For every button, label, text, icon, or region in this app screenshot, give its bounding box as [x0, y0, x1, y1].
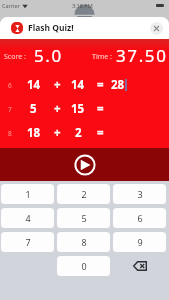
button[interactable]: 3 [113, 184, 166, 204]
staticText: 8 [81, 236, 87, 248]
button[interactable]: Delete [113, 256, 166, 276]
staticText: 2 [75, 125, 82, 141]
staticText: + [54, 77, 61, 93]
staticText: 7 [8, 105, 12, 114]
staticText: 28 [111, 77, 125, 93]
staticText: Carrier [2, 2, 20, 9]
staticText: 37.50 [116, 44, 168, 67]
staticText: 7 [25, 236, 31, 248]
staticText: 3:18 PM [72, 2, 93, 9]
staticText: 6 [8, 81, 12, 90]
staticText: 2 [81, 188, 87, 200]
staticText: = [97, 125, 104, 141]
button[interactable]: 4 [1, 208, 54, 228]
staticText: Flash Quiz! [28, 22, 74, 34]
staticText: 6 [137, 212, 143, 224]
button[interactable]: 9 [113, 232, 166, 252]
button[interactable]: 6 [113, 208, 166, 228]
staticText: 9 [137, 236, 143, 248]
button[interactable]: 1 [1, 184, 54, 204]
button[interactable]: 0 [57, 256, 110, 276]
button[interactable]: 2 [57, 184, 110, 204]
staticText: 3 [137, 188, 143, 200]
staticText: 1 [25, 188, 31, 200]
staticText: = [97, 77, 104, 93]
staticText: Score : [4, 52, 26, 62]
staticText: 15 [71, 101, 85, 117]
staticText: 18 [27, 125, 41, 141]
staticText: = [97, 101, 104, 117]
staticText: + [54, 125, 61, 141]
staticText: 14 [71, 77, 85, 93]
button[interactable]: 5 [57, 208, 110, 228]
button[interactable]: 7 [1, 232, 54, 252]
button[interactable]: 8 [57, 232, 110, 252]
staticText: 5.0 [34, 44, 63, 67]
button[interactable]: Play [74, 154, 96, 176]
staticText: + [54, 101, 61, 117]
staticText: 14 [27, 77, 41, 93]
staticText: 0 [81, 260, 87, 272]
staticText: Time : [92, 52, 112, 62]
staticText: 8 [8, 129, 12, 138]
button[interactable]: Close [150, 22, 163, 35]
staticText: 5 [30, 101, 37, 117]
staticText: 5 [81, 212, 87, 224]
staticText: 4 [25, 212, 31, 224]
